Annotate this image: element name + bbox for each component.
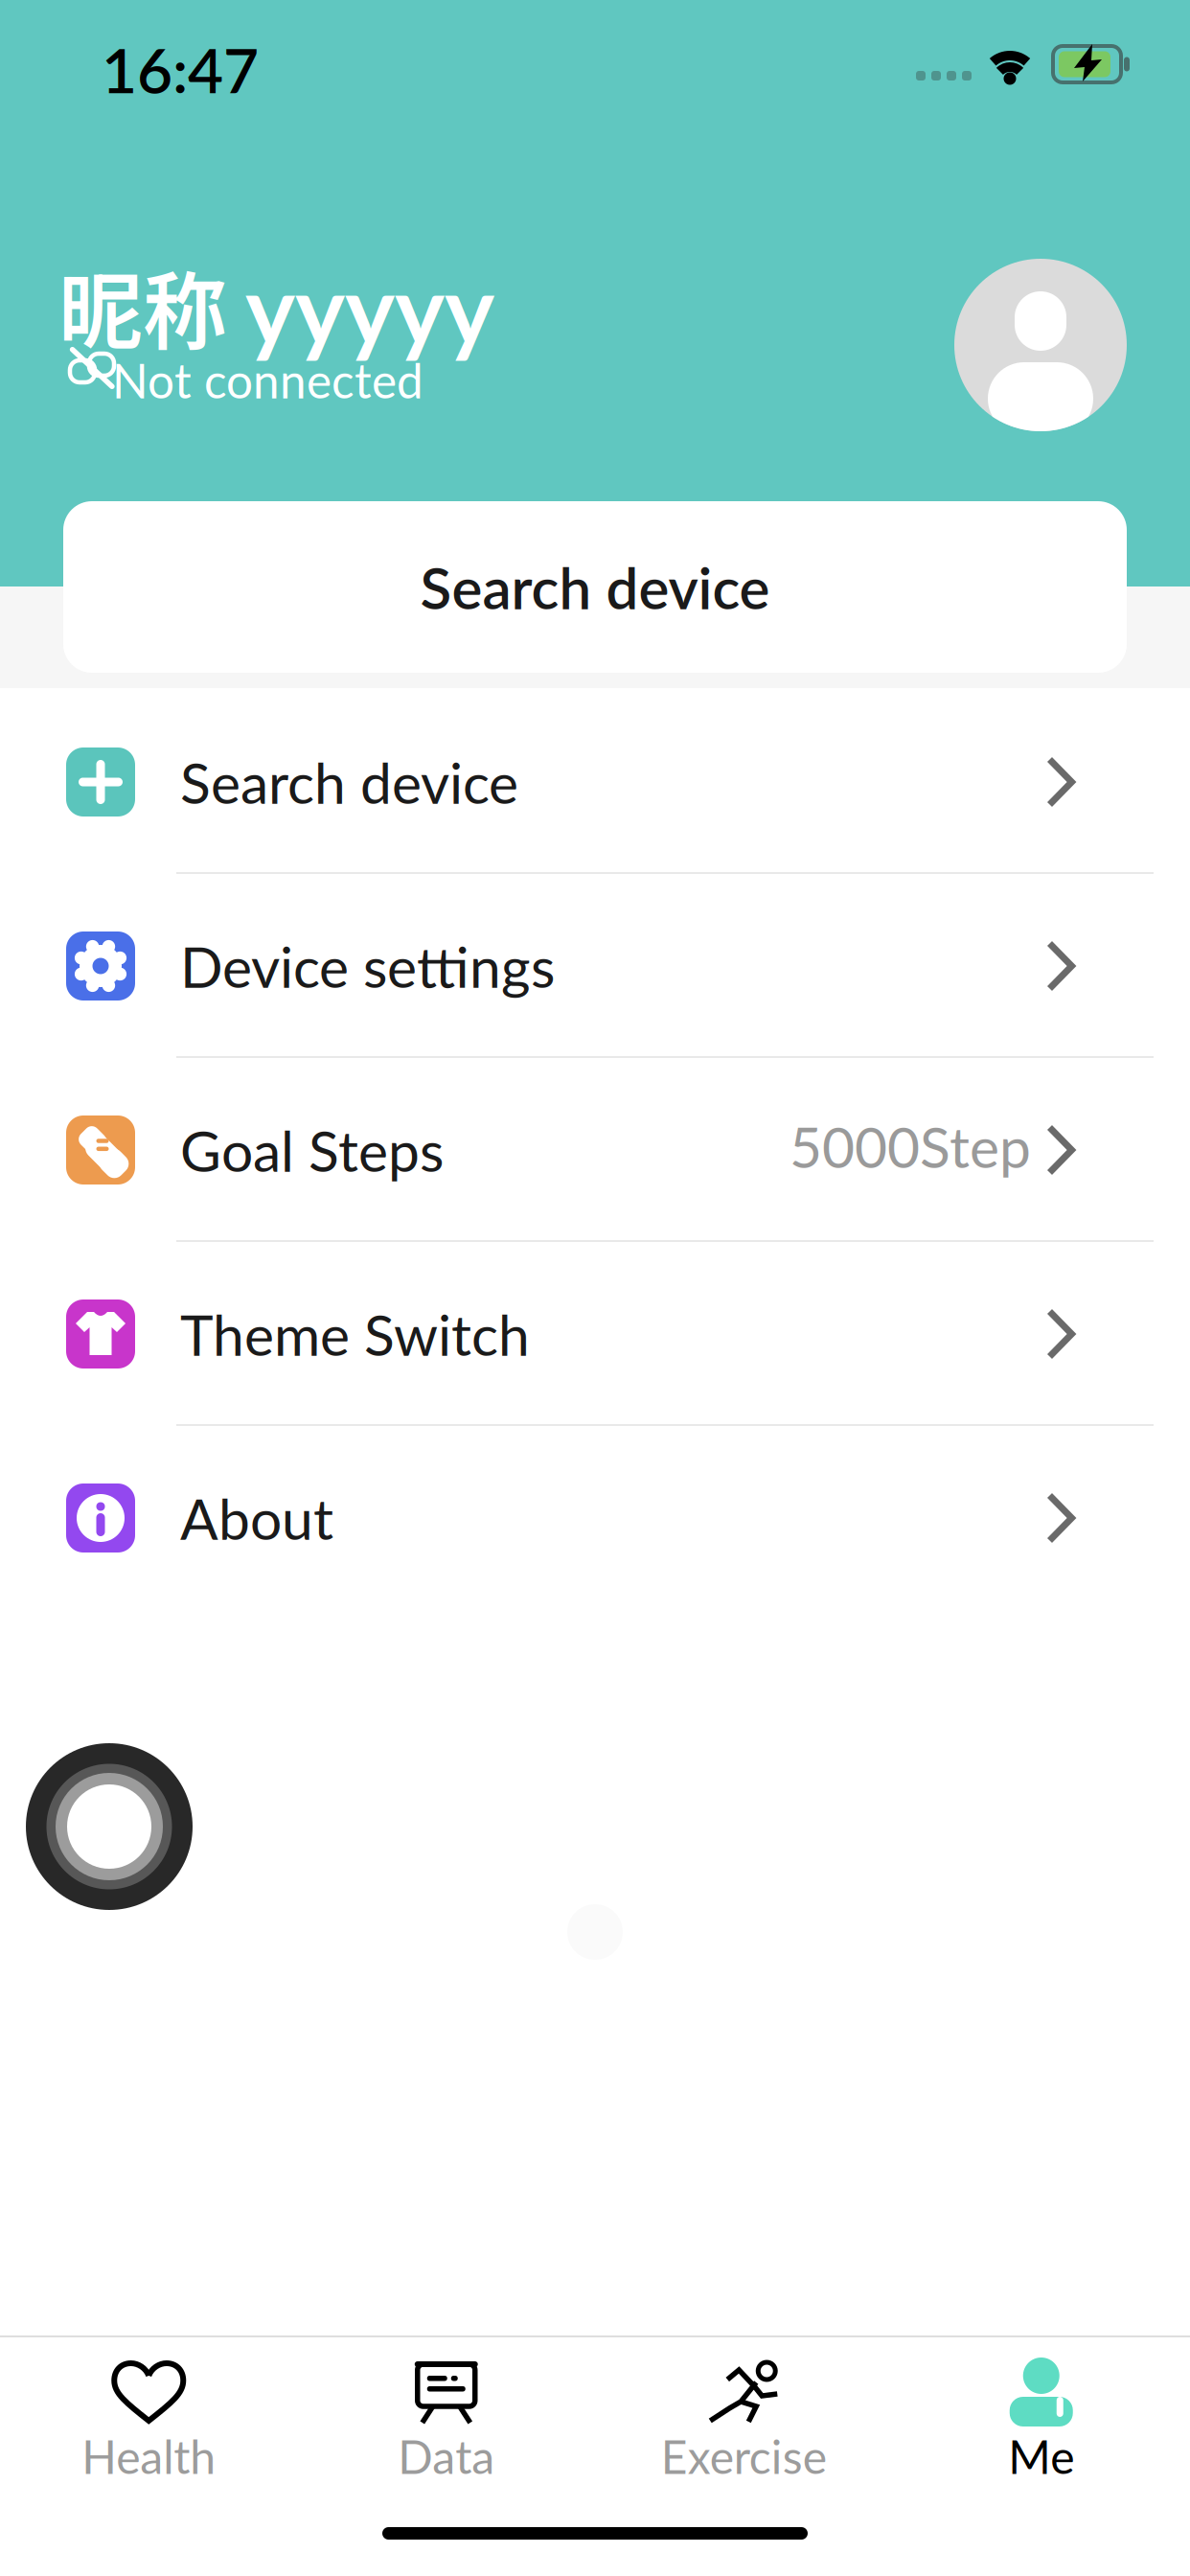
staticText: 5000Step: [790, 1112, 1031, 1180]
button[interactable]: Search device: [63, 501, 1127, 673]
button[interactable]: Theme Switch: [0, 1242, 1190, 1426]
button[interactable]: Data: [297, 2351, 595, 2495]
button[interactable]: Goal Steps: [0, 1058, 1190, 1242]
staticText: Me: [1008, 2429, 1074, 2484]
staticText: Health: [82, 2429, 216, 2484]
staticText: About: [180, 1484, 333, 1552]
staticText: yyyyy: [245, 251, 494, 365]
button[interactable]: Me: [892, 2351, 1190, 2495]
staticText: Search device: [420, 552, 770, 621]
button[interactable]: Search device: [0, 690, 1190, 874]
button[interactable]: Health: [0, 2351, 297, 2495]
button[interactable]: Profile: [954, 259, 1127, 431]
staticText: Theme Switch: [180, 1300, 530, 1368]
staticText: Data: [398, 2429, 495, 2484]
staticText: Not connected: [112, 352, 423, 408]
staticText: Search device: [180, 748, 518, 816]
staticText: 16:47: [102, 33, 259, 106]
staticText: Exercise: [661, 2429, 827, 2484]
staticText: Goal Steps: [180, 1116, 444, 1184]
button[interactable]: Device settings: [0, 874, 1190, 1058]
button[interactable]: Exercise: [595, 2351, 892, 2495]
staticText: Device settings: [180, 932, 555, 1000]
staticText: 昵称: [58, 261, 227, 360]
button[interactable]: About: [0, 1426, 1190, 1610]
